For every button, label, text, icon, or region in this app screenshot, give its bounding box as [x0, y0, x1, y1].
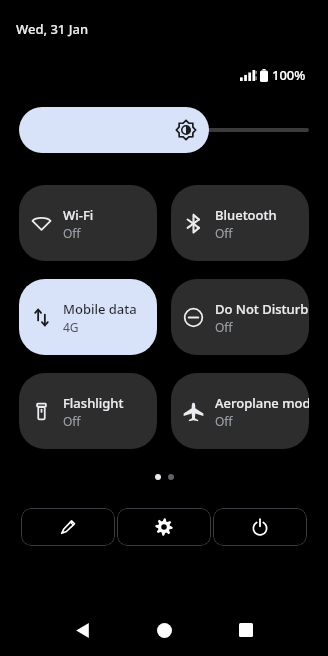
staticText: Flashlight [63, 394, 124, 412]
staticText: Off [63, 413, 81, 429]
button[interactable]: Edit [21, 508, 115, 546]
staticText: Do Not Disturb [215, 300, 309, 318]
button[interactable]: Back [60, 608, 104, 652]
staticText: Off [215, 225, 233, 241]
staticText: Off [63, 225, 81, 241]
staticText: Off [215, 413, 233, 429]
button[interactable]: Mobile data [19, 279, 157, 355]
staticText: Off [215, 319, 233, 335]
staticText: Mobile data [63, 300, 137, 318]
staticText: Wi-Fi [63, 206, 94, 224]
button[interactable]: Wi-Fi [19, 185, 157, 261]
button[interactable]: Recents [224, 608, 268, 652]
button[interactable]: Do Not Disturb [171, 279, 309, 355]
staticText: 100% [272, 66, 306, 84]
button[interactable]: Power [213, 508, 307, 546]
button[interactable]: Bluetooth [171, 185, 309, 261]
button[interactable]: Home [142, 608, 186, 652]
staticText: Wed, 31 Jan [16, 20, 89, 38]
button[interactable]: Settings [117, 508, 211, 546]
staticText: Bluetooth [215, 206, 277, 224]
button[interactable]: Flashlight [19, 373, 157, 449]
staticText: 4G [63, 319, 79, 335]
button[interactable]: Brightness [19, 107, 309, 153]
button[interactable]: Aeroplane mode [171, 373, 309, 449]
staticText: Aeroplane mode [215, 394, 309, 412]
